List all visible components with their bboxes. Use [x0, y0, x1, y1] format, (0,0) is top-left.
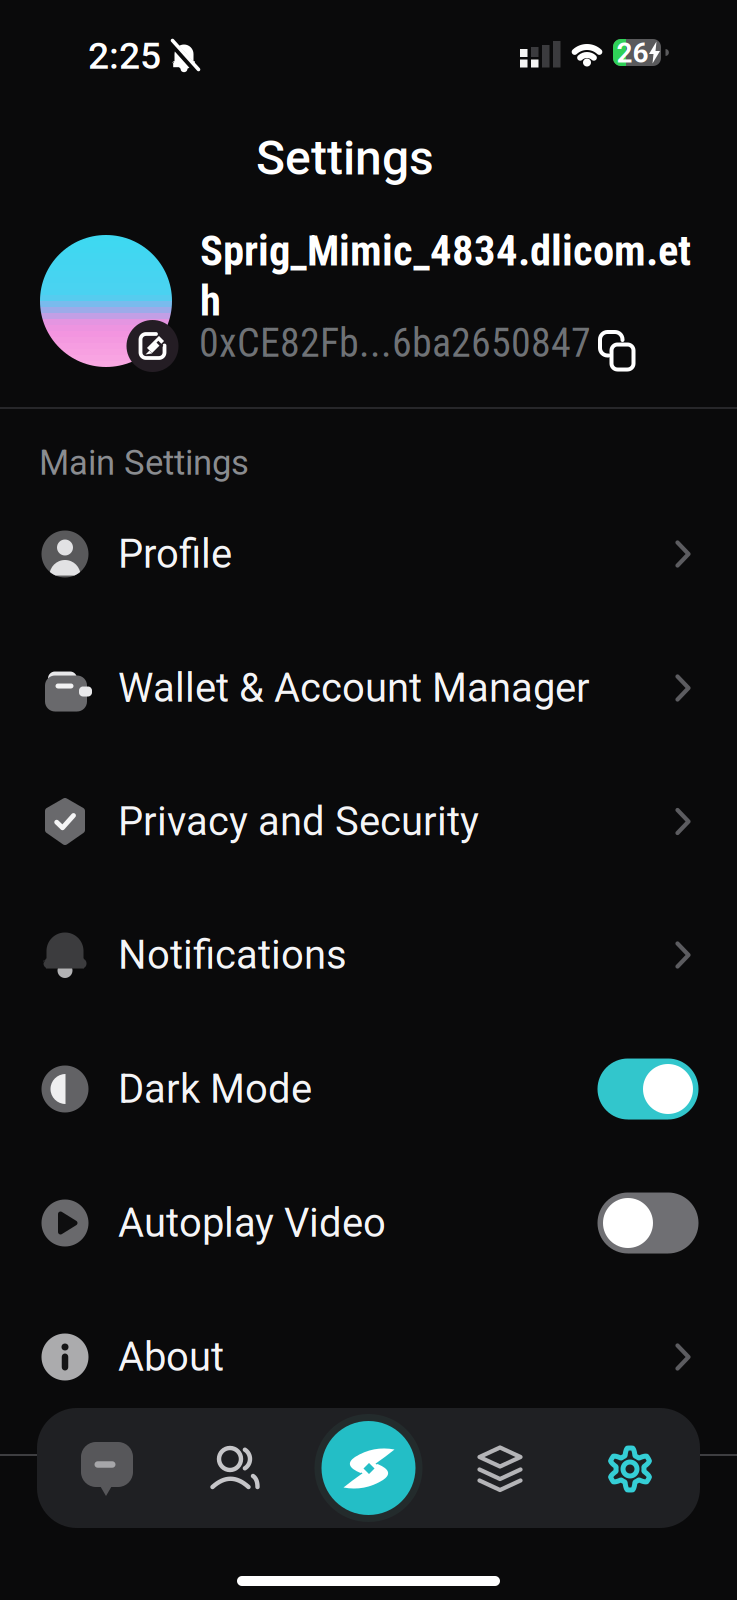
button[interactable]: Wallet & Account Manager [0, 621, 737, 755]
button[interactable]: Dark Mode [597, 1058, 698, 1119]
staticText: Dark Mode [118, 1066, 312, 1112]
button[interactable]: Privacy and Security [0, 754, 737, 888]
staticText: Main Settings [39, 443, 249, 483]
button[interactable]: Home [308, 1408, 428, 1528]
staticText: Sprig_Mimic_4834.dlicom.et h [200, 226, 691, 326]
button[interactable]: Edit profile picture [126, 320, 178, 372]
staticText: Privacy and Security [118, 799, 479, 844]
staticText: 0xCE82Fb...6ba2650847 [199, 320, 591, 366]
staticText: Wallet & Account Manager [118, 665, 590, 711]
staticText: Autoplay Video [118, 1200, 386, 1246]
staticText: Notifications [118, 932, 347, 978]
staticText: Settings [256, 131, 434, 185]
button[interactable]: About [0, 1290, 737, 1424]
staticText: About [118, 1334, 224, 1380]
button[interactable]: Autoplay Video [597, 1192, 698, 1253]
button[interactable]: Profile [0, 487, 737, 621]
button[interactable]: Settings [575, 1409, 685, 1529]
button[interactable]: Contacts [181, 1409, 291, 1529]
button[interactable]: Notifications [0, 888, 737, 1022]
button[interactable]: Collections [445, 1409, 555, 1529]
staticText: 26 [616, 37, 648, 69]
staticText: 2:25 [88, 35, 161, 77]
staticText: Profile [118, 531, 232, 577]
button[interactable]: Copy wallet address [598, 330, 638, 372]
button[interactable]: Chats [52, 1410, 162, 1530]
